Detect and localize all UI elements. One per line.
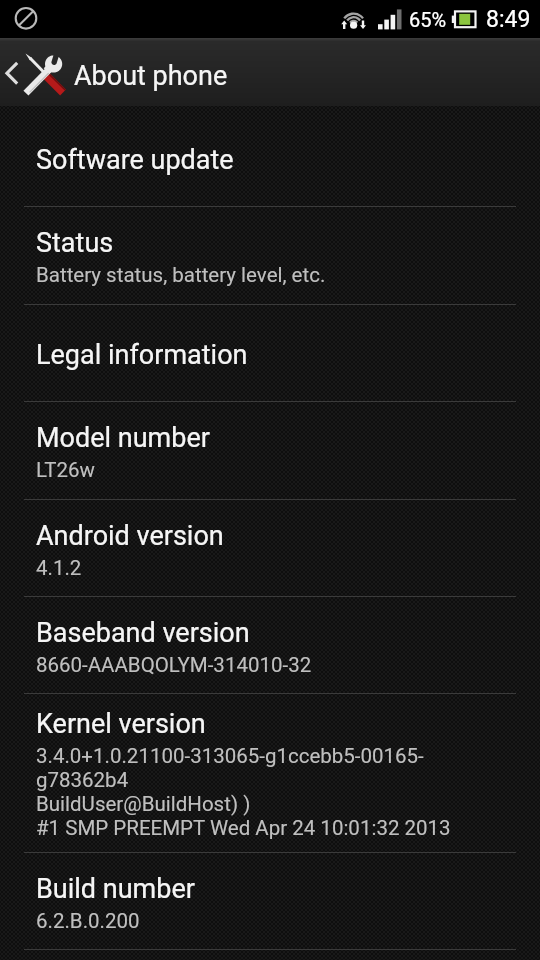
staticText: 8:49 [486, 6, 531, 33]
staticText: 65% [409, 8, 447, 31]
staticText: 3.4.0+1.0.21100-313065-g1ccebb5-00165- [36, 744, 424, 768]
staticText: Baseband version [36, 617, 250, 649]
staticText: g78362b4 [36, 768, 129, 792]
staticText: Build number [36, 873, 195, 905]
staticText: Android version [36, 520, 224, 552]
staticText: BuildUser@BuildHost) ) [36, 792, 251, 816]
staticText: About phone [74, 60, 228, 92]
staticText: Status [36, 227, 114, 259]
staticText: Software update [36, 144, 234, 176]
staticText: #1 SMP PREEMPT Wed Apr 24 10:01:32 2013 [36, 816, 451, 840]
staticText: Battery status, battery level, etc. [36, 263, 326, 287]
button[interactable]: Kernel version [0, 694, 540, 852]
other: Status icons [0, 0, 540, 38]
button[interactable]: Navigate up [0, 38, 540, 106]
other: Navigate up [5, 62, 19, 85]
button[interactable]: Build number [0, 853, 540, 949]
staticText: Kernel version [36, 708, 206, 740]
staticText: LT26w [36, 458, 95, 482]
staticText: 8660-AAABQOLYM-314010-32 [36, 653, 312, 677]
staticText: 6.2.B.0.200 [36, 909, 140, 933]
button[interactable]: Software update [0, 106, 540, 206]
button[interactable]: Model number [0, 402, 540, 499]
button[interactable]: Status [0, 207, 540, 304]
staticText: 4.1.2 [36, 556, 82, 580]
staticText: Model number [36, 422, 210, 454]
button[interactable]: Android version [0, 500, 540, 596]
button[interactable]: Baseband version [0, 597, 540, 693]
staticText: Legal information [36, 339, 248, 371]
button[interactable]: Legal information [0, 305, 540, 401]
